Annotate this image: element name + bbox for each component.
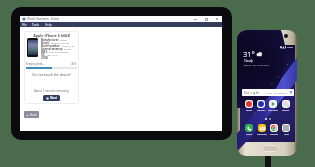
staticText: Play Store [268, 109, 278, 112]
staticText: Model number: [41, 44, 60, 47]
staticText: File [22, 23, 27, 27]
button[interactable]: Camera [257, 100, 265, 112]
staticText: 64 GB [64, 47, 71, 50]
staticText: A1586 (1,2) [61, 44, 74, 47]
button[interactable]: Chrome [270, 124, 278, 136]
staticText: UDID: [41, 56, 49, 59]
button[interactable]: Maximize [204, 17, 208, 21]
button[interactable]: Play Store [268, 100, 278, 112]
button[interactable]: Phone [245, 124, 253, 136]
staticText: e [257, 90, 260, 95]
staticText: o [247, 90, 250, 95]
staticText: G [244, 90, 247, 95]
staticText: Model: [41, 41, 50, 44]
button[interactable]: Home [262, 145, 279, 152]
staticText: Do not touch the device! [24, 72, 79, 77]
staticText: Gmail [246, 109, 252, 112]
staticText: g [253, 90, 256, 95]
staticText: Manufacturer: [41, 38, 59, 41]
staticText: Google [282, 109, 290, 112]
button[interactable]: Apps [282, 124, 290, 136]
button[interactable]: File [22, 23, 27, 27]
staticText: Help [45, 23, 52, 27]
staticText: OS: [41, 53, 46, 56]
button[interactable]: Back [24, 111, 39, 118]
staticText: Phone [246, 133, 253, 136]
staticText: Internal memory: [41, 47, 63, 50]
button[interactable]: Gmail [245, 100, 253, 112]
staticText: Say "Ok Google" [268, 91, 288, 94]
staticText: Messages [257, 133, 267, 136]
staticText: Cloudy [244, 59, 253, 63]
staticText: Erasing data ... [26, 62, 46, 66]
staticText: Tools [32, 23, 40, 27]
staticText: Apple [60, 38, 67, 41]
staticText: l [256, 90, 257, 95]
staticText: 35312345678901 [49, 50, 70, 53]
staticText: Jakarta Sat, 12 Oct 05:42 [244, 64, 269, 67]
staticText: SAMSUNG [237, 39, 297, 43]
button[interactable]: G [242, 89, 294, 96]
staticText: 46% [71, 62, 77, 66]
button[interactable]: Close [215, 17, 219, 21]
staticText: 31° [243, 49, 255, 59]
staticText: iPhone 6 64 GB [51, 41, 69, 44]
button[interactable]: Google [282, 100, 290, 112]
button[interactable]: Messages [257, 124, 267, 136]
button[interactable]: Tools [32, 23, 40, 27]
staticText: iOS 12.4.1 [47, 53, 59, 56]
button[interactable]: Minimize [193, 17, 197, 21]
staticText: About 1 minute remaining [34, 89, 69, 93]
staticText: Apple iPhone 6 64GB [24, 33, 79, 38]
button[interactable]: Help [45, 23, 52, 27]
staticText: Chrome [270, 133, 278, 136]
staticText: Camera [257, 109, 265, 112]
other: Voice search [290, 91, 292, 94]
staticText: ● ▲ ▮ 12:30 [280, 46, 293, 49]
staticText: IMEI: [41, 50, 48, 53]
staticText: Back [30, 113, 38, 117]
staticText: Apps [284, 133, 289, 136]
staticText: Next [50, 96, 57, 100]
button[interactable]: Next [43, 95, 60, 101]
staticText: o [250, 90, 253, 95]
staticText: iTools Services - Erase [27, 17, 60, 21]
